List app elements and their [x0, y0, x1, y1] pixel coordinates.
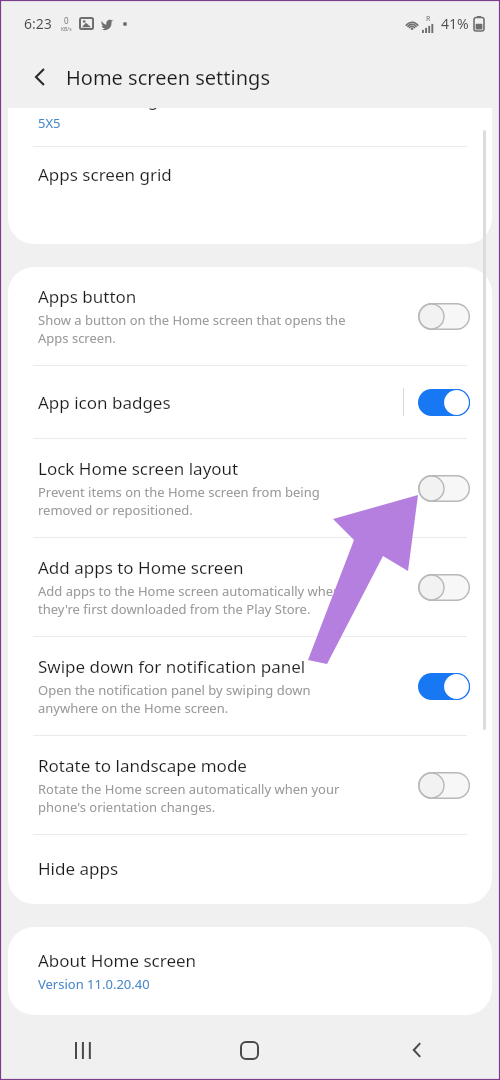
button[interactable]: Apps button: [8, 267, 492, 365]
staticText: R: [426, 14, 431, 24]
staticText: Open the notification panel by swiping d…: [38, 681, 311, 717]
staticText: 5X5: [38, 114, 61, 132]
button[interactable]: [418, 574, 470, 601]
button[interactable]: Lock Home screen layout: [8, 439, 492, 537]
button[interactable]: Swipe down for notification panel: [8, 637, 492, 735]
button[interactable]: About Home screen: [8, 927, 492, 1015]
button[interactable]: Back: [333, 1020, 500, 1080]
button[interactable]: Add apps to Home screen: [8, 538, 492, 636]
staticText: Rotate the Home screen automatically whe…: [38, 780, 340, 816]
staticText: About Home screen: [38, 949, 197, 972]
button[interactable]: App icon badges: [8, 366, 492, 438]
button[interactable]: [418, 475, 470, 502]
button[interactable]: [418, 673, 470, 700]
staticText: Hide apps: [38, 857, 119, 880]
button[interactable]: Home screen grid: [8, 108, 492, 146]
button[interactable]: Recents: [0, 1020, 166, 1080]
button[interactable]: Apps screen grid: [8, 147, 492, 210]
staticText: Home screen grid: [38, 108, 181, 111]
staticText: Apps screen grid: [38, 163, 172, 186]
button[interactable]: Rotate to landscape mode: [8, 736, 492, 834]
staticText: Prevent items on the Home screen from be…: [38, 483, 320, 519]
staticText: Version 11.0.20.40: [38, 975, 150, 993]
staticText: Apps button: [38, 285, 137, 308]
staticText: Home screen settings: [66, 64, 270, 91]
button[interactable]: Hide apps: [8, 835, 492, 904]
staticText: Rotate to landscape mode: [38, 754, 247, 777]
button[interactable]: [418, 772, 470, 799]
staticText: App icon badges: [38, 391, 171, 414]
staticText: Add apps to Home screen: [38, 556, 244, 579]
staticText: Lock Home screen layout: [38, 457, 239, 480]
staticText: 41%: [441, 14, 469, 33]
staticText: Swipe down for notification panel: [38, 655, 306, 678]
staticText: Add apps to the Home screen automaticall…: [38, 582, 342, 618]
staticText: 0: [64, 15, 69, 26]
button[interactable]: Home: [166, 1020, 333, 1080]
staticText: KB/s: [61, 26, 72, 33]
staticText: 6:23: [24, 14, 52, 33]
staticText: Show a button on the Home screen that op…: [38, 311, 346, 347]
button[interactable]: [418, 303, 470, 330]
button[interactable]: Back: [18, 55, 62, 99]
button[interactable]: [418, 389, 470, 416]
